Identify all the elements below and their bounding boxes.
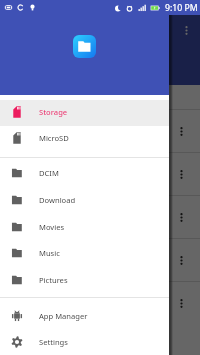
- button[interactable]: Music: [0, 240, 169, 267]
- button[interactable]: Item menu: [173, 166, 189, 182]
- staticText: Pictures: [39, 275, 68, 285]
- button[interactable]: Item menu: [173, 295, 189, 311]
- staticText: Music: [39, 248, 60, 258]
- button[interactable]: Item menu: [0, 281, 200, 324]
- staticText: 9:10 PM: [165, 2, 198, 14]
- staticText: Download: [39, 195, 76, 205]
- button[interactable]: Item menu: [0, 195, 200, 238]
- staticText: MicroSD: [39, 133, 69, 143]
- staticText: Storage: [39, 107, 68, 117]
- button[interactable]: Movies: [0, 214, 169, 241]
- button[interactable]: File manager: [73, 35, 96, 58]
- button[interactable]: Item menu: [0, 109, 200, 152]
- button[interactable]: Item menu: [0, 238, 200, 281]
- button[interactable]: DCIM: [0, 160, 169, 187]
- button[interactable]: More options: [178, 22, 195, 39]
- button[interactable]: Item menu: [173, 252, 189, 268]
- button[interactable]: Item menu: [173, 209, 189, 225]
- button[interactable]: Item menu: [173, 123, 189, 139]
- staticText: Movies: [39, 222, 65, 232]
- button[interactable]: Storage: [0, 100, 169, 126]
- button[interactable]: Settings: [0, 329, 169, 355]
- button[interactable]: Pictures: [0, 267, 169, 294]
- staticText: DCIM: [39, 168, 59, 178]
- button[interactable]: Download: [0, 187, 169, 214]
- staticText: App Manager: [39, 311, 88, 321]
- button[interactable]: [0, 85, 200, 109]
- button[interactable]: App Manager: [0, 303, 169, 330]
- button[interactable]: MicroSD: [0, 126, 169, 152]
- staticText: Settings: [39, 337, 68, 347]
- button[interactable]: Item menu: [0, 152, 200, 195]
